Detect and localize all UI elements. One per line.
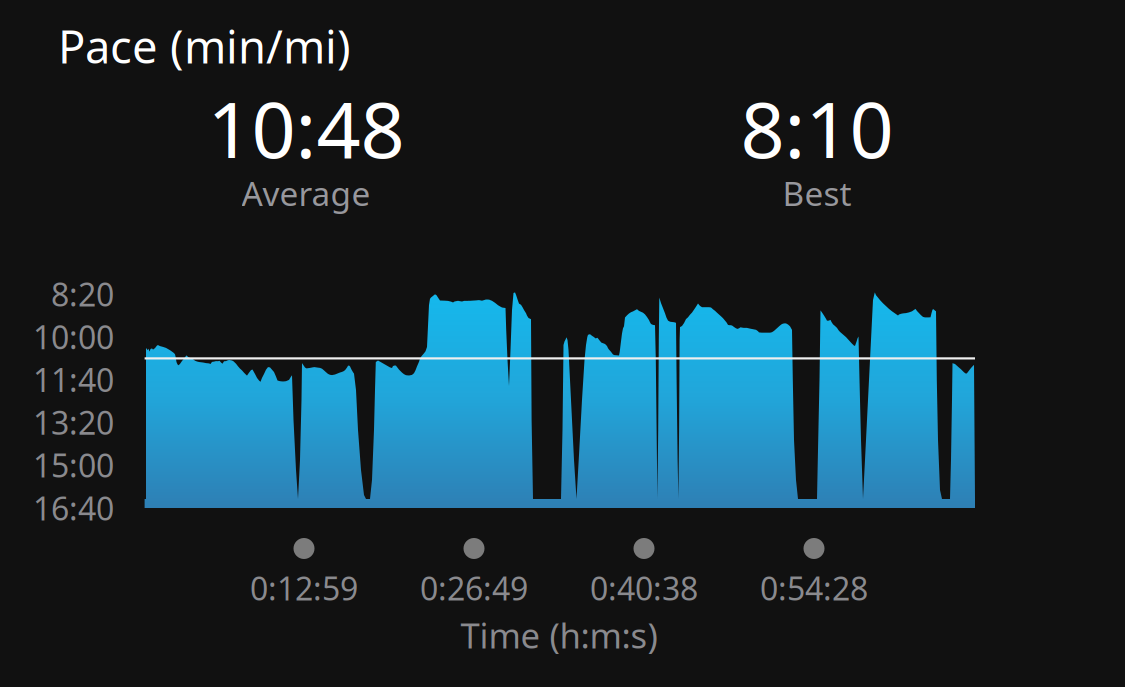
staticText: Best xyxy=(782,171,851,215)
staticText: 13:20 xyxy=(33,401,114,444)
staticText: 11:40 xyxy=(33,358,114,401)
staticText: Time (h:m:s) xyxy=(460,612,657,658)
staticText: 15:00 xyxy=(33,444,114,486)
staticText: 8:10 xyxy=(740,77,893,179)
staticText: 0:54:28 xyxy=(760,567,868,609)
staticText: 0:12:59 xyxy=(250,567,358,609)
staticText: 8:20 xyxy=(51,273,114,315)
staticText: 16:40 xyxy=(33,487,114,529)
staticText: 0:26:49 xyxy=(420,567,528,609)
button[interactable]: Pace (min/mi) xyxy=(0,0,1125,687)
staticText: Average xyxy=(241,171,370,215)
staticText: 0:40:38 xyxy=(590,567,698,609)
staticText: 10:48 xyxy=(207,77,404,179)
staticText: Pace (min/mi) xyxy=(58,16,351,76)
staticText: 10:00 xyxy=(33,316,114,358)
